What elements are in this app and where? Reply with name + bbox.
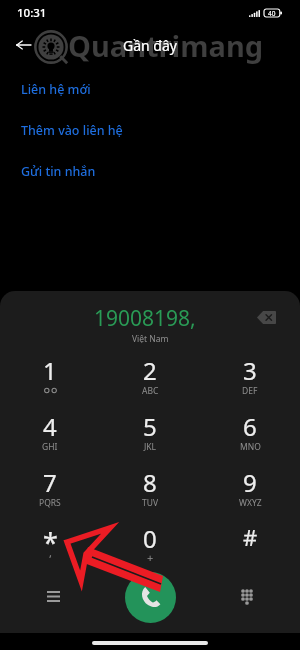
staticText: 8: [143, 466, 157, 499]
button[interactable]: Backspace: [251, 302, 281, 332]
button[interactable]: 9: [200, 457, 300, 513]
staticText: 7: [43, 466, 57, 499]
staticText: TUV: [142, 497, 159, 509]
staticText: Việt Nam: [132, 333, 169, 345]
button[interactable]: Thêm vào liên hệ: [0, 120, 300, 140]
button[interactable]: 5: [100, 401, 200, 457]
staticText: Thêm vào liên hệ: [21, 122, 123, 139]
button[interactable]: Call: [125, 572, 176, 623]
staticText: 0: [143, 522, 157, 555]
button[interactable]: 2: [100, 345, 200, 401]
button[interactable]: Menu: [36, 579, 70, 613]
staticText: 19008198,: [94, 304, 196, 333]
button[interactable]: 3: [200, 345, 300, 401]
staticText: JKL: [144, 441, 157, 453]
button[interactable]: #: [200, 513, 300, 569]
button[interactable]: 1: [0, 345, 100, 401]
staticText: DEF: [242, 385, 258, 397]
staticText: MNO: [240, 441, 261, 453]
staticText: 9: [243, 466, 257, 499]
staticText: GHI: [42, 441, 58, 453]
button[interactable]: Dialpad: [230, 579, 264, 613]
staticText: ABC: [142, 385, 159, 397]
button[interactable]: 6: [200, 401, 300, 457]
staticText: 10:31: [17, 5, 47, 21]
staticText: Gần đây: [123, 36, 177, 55]
button[interactable]: Liên hệ mới: [0, 79, 300, 99]
staticText: 2: [143, 354, 157, 387]
staticText: 5: [143, 410, 157, 443]
staticText: ,: [49, 545, 52, 560]
staticText: 40: [268, 9, 276, 17]
staticText: 1: [43, 354, 57, 387]
staticText: 6: [243, 410, 257, 443]
button[interactable]: 0: [100, 513, 200, 569]
button[interactable]: 4: [0, 401, 100, 457]
button[interactable]: *: [0, 513, 100, 569]
button[interactable]: 7: [0, 457, 100, 513]
staticText: Gửi tin nhắn: [21, 163, 96, 180]
staticText: 3: [243, 354, 257, 387]
button[interactable]: 8: [100, 457, 200, 513]
button[interactable]: Gửi tin nhắn: [0, 161, 300, 181]
staticText: PQRS: [39, 497, 61, 509]
staticText: #: [243, 522, 258, 552]
staticText: Liên hệ mới: [21, 81, 91, 98]
staticText: +: [147, 550, 154, 565]
staticText: WXYZ: [239, 497, 262, 509]
button[interactable]: Back: [9, 31, 37, 59]
staticText: Quantrimang: [68, 26, 264, 65]
staticText: *: [43, 524, 58, 561]
staticText: 4: [43, 410, 57, 443]
